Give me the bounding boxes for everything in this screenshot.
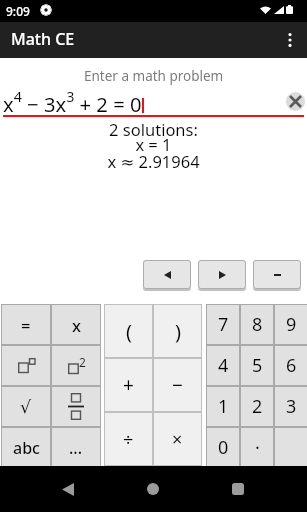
button[interactable]: 6: [274, 345, 307, 386]
staticText: −: [172, 372, 183, 398]
staticText: 5: [252, 353, 263, 378]
staticText: √: [20, 397, 32, 417]
staticText: x4 − 3x3 + 2 = 0: [3, 87, 142, 118]
staticText: ·: [255, 435, 260, 460]
button[interactable]: 4: [206, 345, 240, 386]
button[interactable]: 7: [206, 304, 240, 345]
button[interactable]: [51, 386, 101, 427]
button[interactable]: [48, 466, 88, 512]
staticText: ×: [172, 427, 183, 452]
staticText: (: [126, 318, 132, 345]
staticText: ): [175, 318, 181, 345]
staticText: 8: [252, 312, 263, 337]
button[interactable]: [271, 22, 307, 58]
button[interactable]: 8: [240, 304, 274, 345]
button[interactable]: 0: [206, 427, 240, 468]
button[interactable]: (: [104, 304, 153, 358]
staticText: 2: [79, 354, 86, 370]
button[interactable]: abc: [1, 427, 51, 468]
button[interactable]: 2: [51, 345, 101, 386]
button[interactable]: ×: [153, 412, 202, 466]
button[interactable]: [274, 427, 307, 468]
staticText: abc: [13, 437, 40, 459]
staticText: 9:09: [6, 3, 30, 19]
staticText: +: [123, 372, 134, 398]
button[interactable]: ·: [240, 427, 274, 468]
button[interactable]: [198, 260, 246, 289]
staticText: ÷: [123, 427, 134, 452]
button[interactable]: [286, 92, 305, 111]
staticText: 6: [286, 353, 297, 378]
button[interactable]: ): [153, 304, 202, 358]
staticText: 4: [218, 353, 229, 378]
staticText: x: [72, 314, 81, 336]
staticText: Math CE: [11, 28, 75, 50]
button[interactable]: [133, 466, 173, 512]
staticText: Enter a math problem: [84, 67, 224, 85]
staticText: 1: [218, 394, 229, 419]
button[interactable]: +: [104, 358, 153, 412]
staticText: 7: [218, 312, 229, 337]
button[interactable]: [1, 345, 51, 386]
staticText: 2 solutions: x = 1 x ≈ 2.91964: [0, 118, 307, 172]
button[interactable]: √: [1, 386, 51, 427]
button[interactable]: [218, 466, 258, 512]
button[interactable]: ÷: [104, 412, 153, 466]
button[interactable]: 5: [240, 345, 274, 386]
staticText: 9: [286, 312, 297, 337]
staticText: =: [21, 314, 31, 336]
button[interactable]: ...: [51, 427, 101, 468]
button[interactable]: [143, 260, 191, 289]
staticText: 2: [252, 394, 263, 419]
button[interactable]: 2: [240, 386, 274, 427]
button[interactable]: −: [153, 358, 202, 412]
button[interactable]: =: [1, 304, 51, 345]
button[interactable]: [253, 260, 301, 289]
button[interactable]: 9: [274, 304, 307, 345]
staticText: 3: [286, 394, 297, 419]
button[interactable]: 3: [274, 386, 307, 427]
button[interactable]: 1: [206, 386, 240, 427]
staticText: ...: [69, 437, 83, 459]
staticText: 0: [218, 435, 229, 460]
button[interactable]: x: [51, 304, 101, 345]
